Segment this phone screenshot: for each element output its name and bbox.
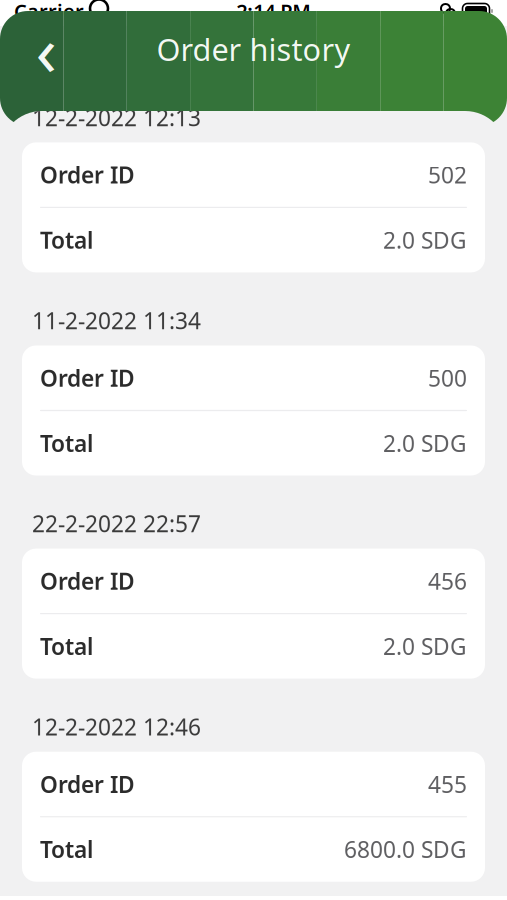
staticText: Total [40,631,93,661]
staticText: ‹ [35,3,56,95]
staticText: 2.0 SDG [383,225,467,255]
staticText: Carrier [14,0,84,24]
staticText: Order ID [40,363,135,393]
button[interactable]: Order ID [0,345,507,475]
staticText: 2.0 SDG [383,631,467,661]
staticText: 12-2-2022 12:46 [32,712,201,742]
staticText: 22-2-2022 22:57 [32,508,201,539]
button[interactable]: Order ID [0,752,507,882]
staticText: Total [40,225,93,255]
button[interactable]: Order ID [0,142,507,272]
staticText: Total [40,428,93,458]
staticText: Order ID [40,566,135,596]
staticText: Order history [156,29,350,69]
staticText: 11-2-2022 11:34 [32,305,201,335]
button[interactable]: Back [18,21,74,77]
staticText: 2.0 SDG [383,428,467,458]
staticText: Order ID [40,769,135,799]
staticText: 500 [428,363,467,393]
staticText: 12-2-2022 12:13 [32,102,201,132]
staticText: 502 [428,160,467,190]
staticText: 6800.0 SDG [344,834,467,864]
staticText: Order ID [40,160,135,190]
button[interactable]: Order ID [0,549,507,679]
staticText: 456 [428,566,467,596]
staticText: 455 [428,769,467,799]
staticText: 2:14 PM [236,0,311,24]
staticText: Total [40,834,93,864]
